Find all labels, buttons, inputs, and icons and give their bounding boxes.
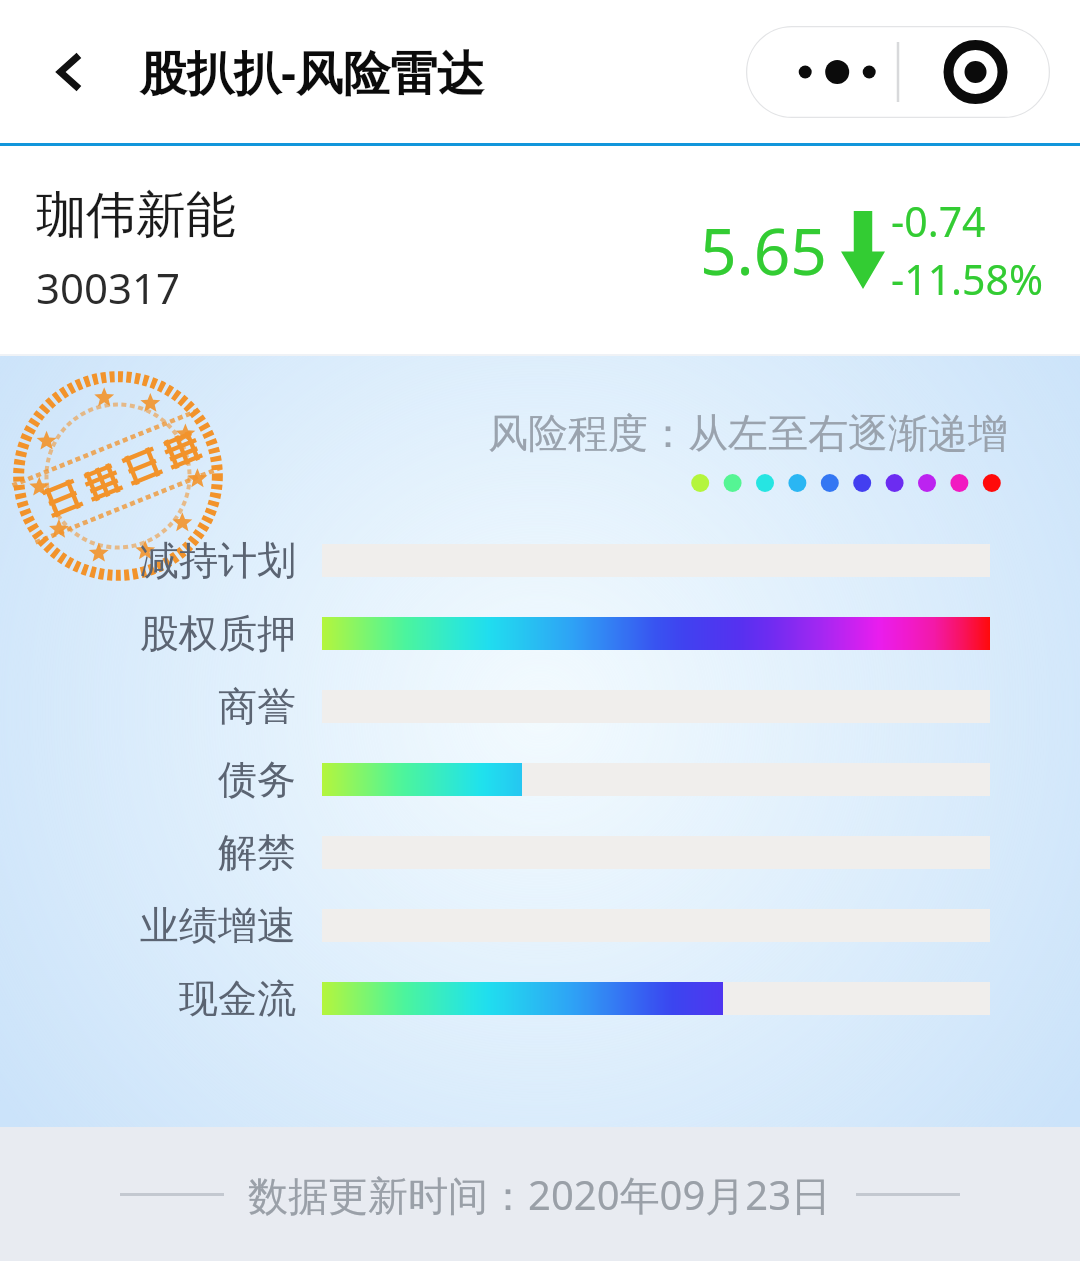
staticText: -0.74: [891, 193, 986, 249]
button[interactable]: 股权质押: [28, 597, 990, 670]
staticText: 商誉: [28, 682, 296, 731]
staticText: 300317: [36, 259, 181, 316]
staticText: -11.58%: [891, 251, 1044, 307]
button[interactable]: 商誉: [28, 670, 990, 743]
staticText: 风险程度：从左至右逐渐递增: [488, 408, 1008, 458]
staticText: 5.65: [700, 207, 827, 294]
staticText: 股权质押: [28, 609, 296, 658]
staticText: 业绩增速: [28, 901, 296, 950]
staticText: 债务: [28, 755, 296, 804]
button[interactable]: Menu and close: [746, 26, 1050, 118]
staticText: 减持计划: [28, 536, 296, 585]
button[interactable]: 业绩增速: [28, 889, 990, 962]
button[interactable]: 现金流: [28, 962, 990, 1035]
staticText: 解禁: [28, 828, 296, 877]
button[interactable]: 解禁: [28, 816, 990, 889]
button[interactable]: 减持计划: [28, 524, 990, 597]
staticText: 珈伟新能: [36, 184, 236, 247]
button[interactable]: Back: [40, 41, 102, 103]
staticText: 数据更新时间：2020年09月23日: [248, 1167, 832, 1222]
staticText: 股扒扒-风险雷达: [140, 40, 485, 104]
button[interactable]: 债务: [28, 743, 990, 816]
staticText: 现金流: [28, 974, 296, 1023]
